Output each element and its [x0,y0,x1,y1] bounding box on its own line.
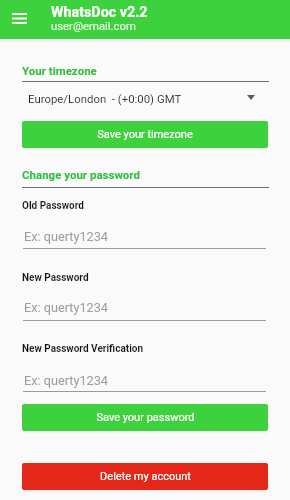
button[interactable]: Save your password [22,404,268,431]
staticText: Ex: querty1234 [24,229,108,244]
button[interactable]: Open navigation menu [5,6,33,32]
staticText: Save your timezone [97,128,193,141]
staticText: New Password [22,272,89,284]
staticText: Your timezone [22,64,97,77]
button[interactable]: Ex: querty1234 [0,299,290,325]
staticText: Europe/London - (+0:00) GMT [28,92,182,105]
button[interactable]: Ex: querty1234 [0,372,290,396]
button[interactable]: Delete my account [22,463,268,490]
staticText: user@email.com [51,20,136,33]
staticText: Change your password [22,168,140,181]
staticText: Old Password [22,200,84,212]
staticText: WhatsDoc v2.2 [51,4,148,21]
staticText: Ex: querty1234 [24,300,108,315]
staticText: New Password Verification [22,343,144,355]
staticText: Delete my account [100,470,191,483]
staticText: Ex: querty1234 [24,373,108,388]
button[interactable]: Ex: querty1234 [0,228,290,253]
button[interactable]: Save your timezone [22,121,268,148]
staticText: Save your password [96,411,195,424]
button[interactable]: Europe/London - (+0:00) GMT [0,90,290,110]
